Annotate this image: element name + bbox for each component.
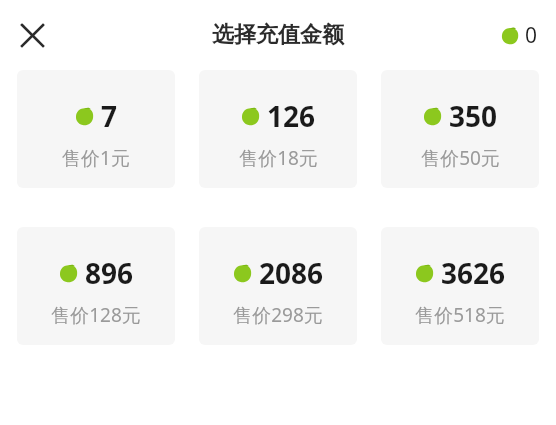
staticText: 售价1元 (62, 145, 130, 171)
staticText: 售价518元 (415, 302, 505, 328)
button[interactable]: 2086 (199, 227, 357, 345)
staticText: 售价128元 (51, 302, 141, 328)
staticText: 0 (525, 21, 538, 50)
button[interactable]: 0 (501, 21, 538, 50)
button[interactable]: 896 (17, 227, 175, 345)
button[interactable]: 126 (199, 70, 357, 188)
staticText: 7 (101, 97, 118, 135)
staticText: 350 (449, 97, 498, 135)
button[interactable]: 350 (381, 70, 539, 188)
staticText: 126 (267, 97, 316, 135)
staticText: 896 (85, 254, 134, 292)
button[interactable]: 7 (17, 70, 175, 188)
staticText: 售价298元 (233, 302, 323, 328)
button[interactable]: 3626 (381, 227, 539, 345)
staticText: 3626 (441, 254, 506, 292)
staticText: 选择充值金额 (212, 21, 344, 49)
staticText: 2086 (259, 254, 324, 292)
staticText: 售价18元 (239, 145, 318, 171)
button[interactable]: Close (10, 13, 54, 57)
staticText: 售价50元 (421, 145, 500, 171)
